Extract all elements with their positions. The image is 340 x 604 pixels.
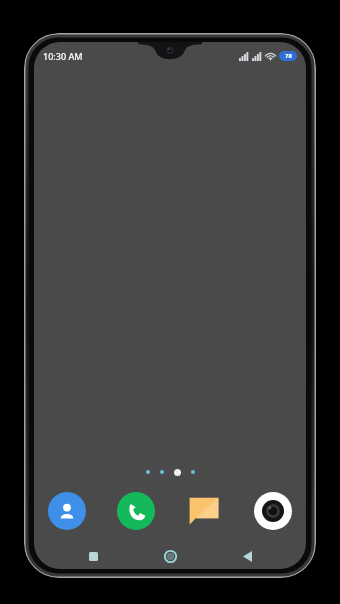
staticText: 10:30 AM bbox=[43, 50, 83, 62]
button[interactable]: Contacts bbox=[48, 492, 86, 530]
button[interactable]: Back bbox=[236, 545, 258, 567]
button[interactable]: Home bbox=[159, 545, 181, 567]
button[interactable]: Camera bbox=[254, 492, 292, 530]
staticText: 78 bbox=[285, 52, 292, 60]
button[interactable]: Phone bbox=[117, 492, 155, 530]
button[interactable]: Messages bbox=[185, 492, 223, 530]
button[interactable]: Recents bbox=[82, 545, 104, 567]
